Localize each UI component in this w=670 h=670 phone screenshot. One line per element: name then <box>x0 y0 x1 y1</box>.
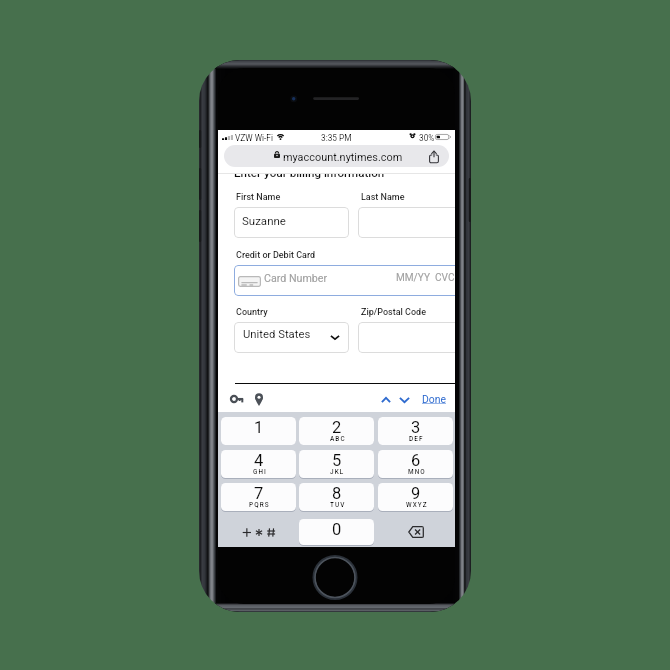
staticText: 3 <box>411 418 421 437</box>
staticText: Zip/Postal Code <box>361 307 426 318</box>
button[interactable]: Suzanne <box>234 207 349 238</box>
staticText: 5 <box>332 451 342 470</box>
staticText: Last Name <box>361 192 405 203</box>
button[interactable] <box>358 207 455 238</box>
staticText: myaccount.nytimes.com <box>283 151 403 164</box>
staticText: Credit or Debit Card <box>236 250 316 261</box>
staticText: MNO <box>408 468 426 476</box>
staticText: Card Number <box>264 272 328 285</box>
staticText: Enter your billing information <box>234 174 385 180</box>
button[interactable]: 1 <box>221 417 296 445</box>
button[interactable]: 9 <box>378 483 453 511</box>
staticText: PQRS <box>249 501 270 509</box>
staticText: 6 <box>411 451 421 470</box>
staticText: ABC <box>330 435 346 443</box>
button[interactable]: 6 <box>378 450 453 478</box>
staticText: First Name <box>236 192 281 203</box>
staticText: CVC <box>435 272 455 284</box>
button[interactable]: 5 <box>299 450 374 478</box>
staticText: 3:35 PM <box>321 133 352 143</box>
button[interactable]: myaccount.nytimes.com <box>224 145 449 167</box>
staticText: 7 <box>254 484 264 503</box>
button[interactable]: United States <box>234 322 349 353</box>
staticText: 9 <box>411 484 421 503</box>
button[interactable]: 8 <box>299 483 374 511</box>
button[interactable]: Delete <box>378 519 453 545</box>
button[interactable]: Previous field <box>378 392 393 408</box>
staticText: 0 <box>332 520 342 539</box>
button[interactable]: Share <box>425 148 442 165</box>
staticText: 8 <box>332 484 342 503</box>
staticText: WXYZ <box>406 501 428 509</box>
button[interactable]: 2 <box>299 417 374 445</box>
button[interactable]: Done <box>422 393 446 405</box>
staticText: Done <box>422 393 446 405</box>
staticText: Country <box>236 307 268 318</box>
staticText: Suzanne <box>242 214 286 227</box>
button[interactable]: 0 <box>299 519 374 545</box>
button[interactable]: Card Number <box>234 265 455 296</box>
staticText: VZW Wi-Fi <box>235 133 273 143</box>
button[interactable] <box>358 322 455 353</box>
staticText: GHI <box>253 468 267 476</box>
staticText: 4 <box>254 451 264 470</box>
staticText: 30% <box>419 133 435 143</box>
staticText: TUV <box>330 501 346 509</box>
button[interactable]: 4 <box>221 450 296 478</box>
button[interactable] <box>221 519 296 545</box>
staticText: DEF <box>409 435 424 443</box>
staticText: 1 <box>254 418 264 437</box>
button[interactable]: 7 <box>221 483 296 511</box>
staticText: United States <box>243 328 311 341</box>
button[interactable]: 3 <box>378 417 453 445</box>
staticText: 2 <box>332 418 342 437</box>
button[interactable]: Next field <box>397 392 412 408</box>
staticText: JKL <box>330 468 345 476</box>
staticText: MM/YY <box>396 272 431 284</box>
